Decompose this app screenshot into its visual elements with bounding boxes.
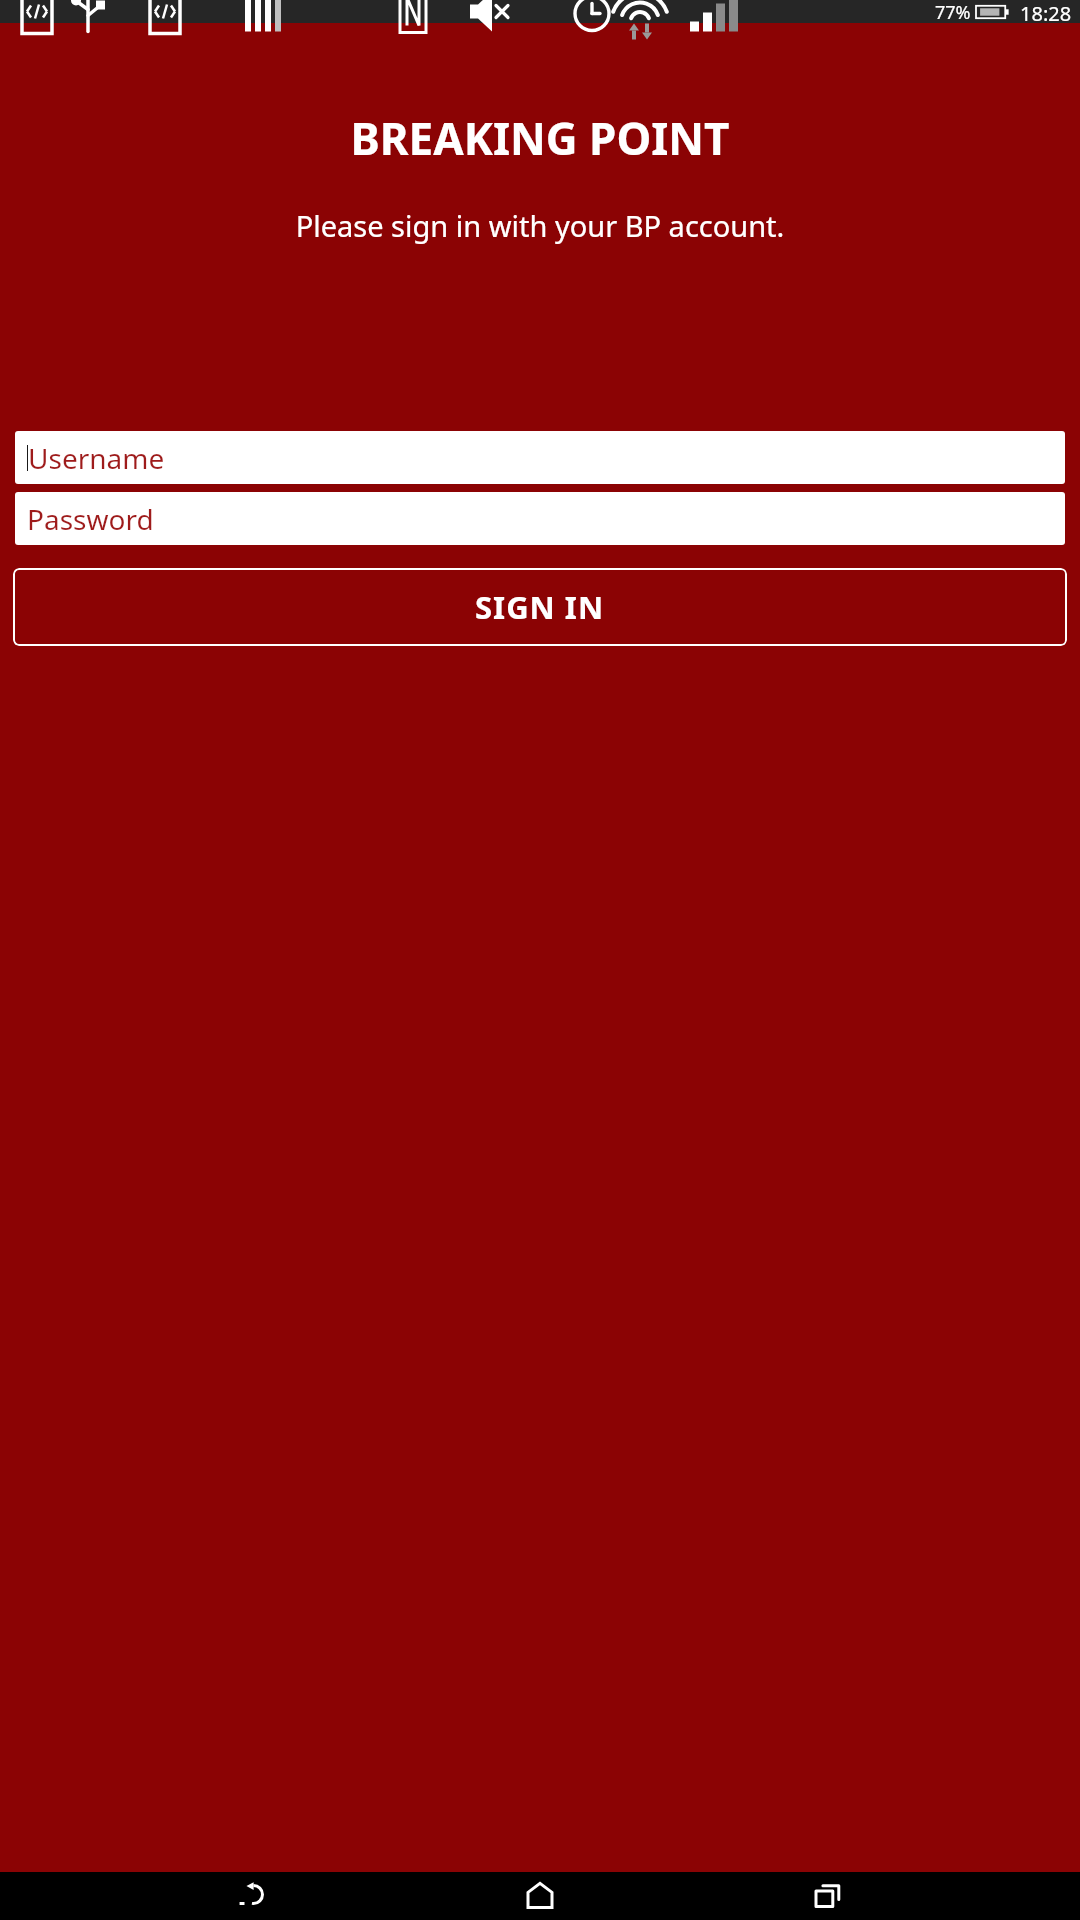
staticText: Please sign in with your BP account. [0, 206, 1080, 245]
button[interactable]: Username [15, 431, 1065, 484]
button[interactable]: Back [216, 1872, 288, 1920]
button[interactable]: Password [15, 492, 1065, 545]
staticText: Username [28, 439, 165, 477]
button[interactable]: Recent apps [792, 1872, 864, 1920]
button[interactable]: SIGN IN [13, 568, 1067, 646]
staticText: BREAKING POINT [0, 108, 1080, 168]
staticText: SIGN IN [475, 586, 605, 628]
staticText: Password [27, 500, 154, 538]
staticText: 18:28 [1020, 0, 1072, 23]
staticText: 77% [935, 0, 971, 23]
button[interactable]: Home [504, 1872, 576, 1920]
